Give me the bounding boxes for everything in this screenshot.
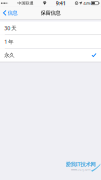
staticText: 保留信息	[40, 10, 60, 16]
staticText: 永久	[4, 52, 14, 58]
staticText: 爱我IT技术网	[65, 161, 95, 168]
staticText: 43%	[83, 0, 90, 6]
staticText: 1 年	[4, 38, 13, 45]
staticText: 9:41	[56, 0, 66, 7]
button[interactable]: 1 年	[0, 35, 101, 48]
button[interactable]: 30 天	[0, 21, 101, 35]
staticText: 中国联通	[17, 1, 33, 6]
staticText: 30 天	[4, 24, 16, 32]
button[interactable]: 永久	[0, 49, 101, 62]
staticText: 信息	[7, 10, 17, 16]
button[interactable]: 信息	[0, 6, 20, 19]
staticText: www.52ij.com	[71, 168, 90, 171]
